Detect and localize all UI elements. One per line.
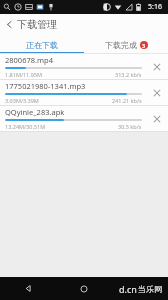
staticText: 13.24M/30.51M xyxy=(5,123,46,130)
staticText: QQyinle_283.apk xyxy=(5,107,65,117)
button[interactable]: Home xyxy=(56,277,112,300)
staticText: 3.03M/3.39M xyxy=(5,97,39,104)
button[interactable]: 正在下载 xyxy=(0,35,84,54)
staticText: 30.5 kb/s xyxy=(118,123,142,130)
other: Back xyxy=(5,20,14,29)
button[interactable]: Cancel download xyxy=(146,108,168,130)
staticText: 313.2 kb/s xyxy=(115,71,142,78)
button[interactable]: Cancel download xyxy=(146,56,168,78)
button[interactable]: Back xyxy=(0,14,63,35)
staticText: 5:16 xyxy=(148,2,162,12)
staticText: 2800678.mp4 xyxy=(5,55,53,65)
staticText: 1.81M/11.95M xyxy=(5,71,42,78)
button[interactable]: 2800678.mp4 xyxy=(0,54,168,79)
staticText: 241.21 kb/s xyxy=(112,97,142,104)
staticText: 1775021980-1341.mp3 xyxy=(5,81,86,91)
staticText: 下载完成 xyxy=(105,40,137,50)
staticText: 3 xyxy=(142,42,146,49)
button[interactable]: Cancel download xyxy=(146,82,168,104)
button[interactable]: QQyinle_283.apk xyxy=(0,106,168,131)
staticText: d.cn xyxy=(119,283,137,295)
button[interactable]: Back xyxy=(0,277,56,300)
staticText: 下载管理 xyxy=(17,18,57,31)
button[interactable]: 1775021980-1341.mp3 xyxy=(0,80,168,105)
staticText: 正在下载 xyxy=(26,40,58,50)
staticText: 当乐网 xyxy=(138,284,162,294)
button[interactable]: 下载完成 xyxy=(84,35,168,54)
